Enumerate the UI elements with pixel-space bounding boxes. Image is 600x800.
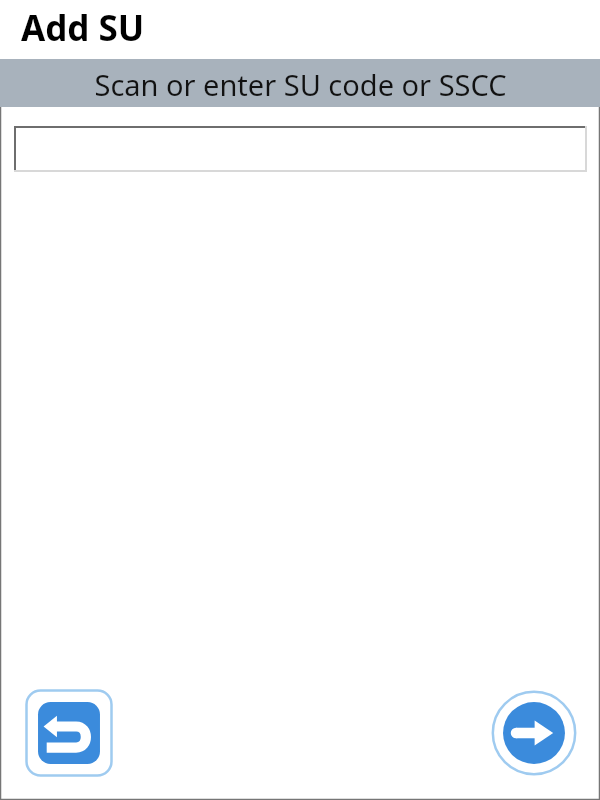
staticText: Add SU bbox=[21, 4, 145, 52]
staticText: Scan or enter SU code or SSCC bbox=[94, 65, 507, 104]
button[interactable] bbox=[14, 126, 587, 172]
button[interactable]: Next bbox=[490, 689, 578, 777]
button[interactable]: Back bbox=[25, 689, 113, 777]
